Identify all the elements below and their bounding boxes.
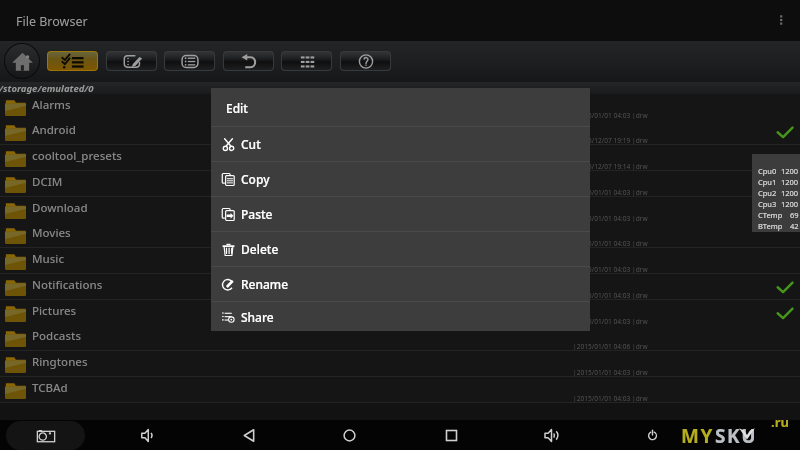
- button[interactable]: Rename: [211, 267, 590, 301]
- button[interactable]: Edit: [107, 52, 156, 70]
- staticText: DCIM: [32, 174, 63, 190]
- staticText: |2015/01/01 04:03 |drw: [573, 317, 648, 326]
- button[interactable]: Help: [341, 52, 390, 70]
- staticText: CTemp: [758, 210, 783, 220]
- staticText: 69: [790, 210, 799, 220]
- staticText: |2015/01/01 04:03 |drw: [573, 111, 648, 120]
- button[interactable]: Ringtones: [0, 351, 800, 377]
- staticText: Edit: [226, 100, 248, 116]
- staticText: File Browser: [16, 13, 88, 30]
- button[interactable]: Music: [0, 248, 800, 274]
- staticText: Android: [32, 122, 76, 138]
- staticText: Notifications: [32, 277, 103, 293]
- staticText: Cut: [241, 136, 261, 152]
- button[interactable]: Select mode: [48, 52, 97, 70]
- staticText: .ru: [771, 413, 789, 431]
- staticText: 1200: [781, 166, 799, 176]
- staticText: Cpu2: [758, 188, 777, 198]
- staticText: |2015/01/01 04:06 |drw: [573, 342, 648, 351]
- button[interactable]: More options: [768, 7, 794, 33]
- staticText: 42: [790, 221, 799, 231]
- button[interactable]: Undo: [224, 52, 273, 70]
- button[interactable]: Alarms: [0, 94, 800, 120]
- staticText: |2015/12/07 19:14 |drw: [573, 162, 648, 171]
- staticText: cooltool_presets: [32, 148, 122, 164]
- button[interactable]: cooltool_presets: [0, 145, 800, 171]
- button[interactable]: Power: [637, 420, 667, 450]
- button[interactable]: Share: [211, 302, 590, 331]
- staticText: |2015/01/01 04:03 |drw: [573, 239, 648, 248]
- button[interactable]: List: [165, 52, 214, 70]
- button[interactable]: Android: [0, 119, 800, 145]
- button[interactable]: Volume up: [536, 420, 566, 450]
- staticText: |2015/01/01 04:03 |drw: [573, 265, 648, 274]
- staticText: |2015/01/01 04:03 |drw: [573, 368, 648, 377]
- button[interactable]: Screenshot: [6, 421, 85, 450]
- button[interactable]: Pictures: [0, 300, 800, 326]
- button[interactable]: Grid: [282, 52, 331, 70]
- staticText: Cpu1: [758, 177, 777, 187]
- staticText: Delete: [241, 241, 279, 257]
- button[interactable]: Podcasts: [0, 325, 800, 351]
- button[interactable]: Home: [334, 420, 364, 450]
- staticText: |2015/01/01 04:03 |drw: [573, 214, 648, 223]
- staticText: |2015/01/01 04:03 |drw: [573, 291, 648, 300]
- staticText: SKU: [715, 423, 758, 449]
- staticText: Music: [32, 251, 65, 267]
- staticText: |2015/01/01 04:03 |drw: [573, 188, 648, 197]
- staticText: Share: [241, 309, 274, 325]
- staticText: MY: [681, 423, 715, 449]
- button[interactable]: Copy: [211, 162, 590, 196]
- button[interactable]: Volume down: [132, 420, 162, 450]
- staticText: Copy: [241, 171, 270, 187]
- staticText: BTemp: [758, 221, 783, 231]
- button[interactable]: Recents: [436, 420, 466, 450]
- button[interactable]: Movies: [0, 222, 800, 248]
- staticText: 1200: [781, 188, 799, 198]
- staticText: /storage/emulated/0: [0, 82, 94, 94]
- staticText: Cpu0: [758, 166, 777, 176]
- staticText: Download: [32, 200, 88, 216]
- button[interactable]: Notifications: [0, 274, 800, 300]
- button[interactable]: Delete: [211, 232, 590, 266]
- staticText: Cpu3: [758, 199, 777, 209]
- staticText: Pictures: [32, 303, 77, 319]
- staticText: Podcasts: [32, 328, 81, 344]
- button[interactable]: Back: [234, 420, 264, 450]
- button[interactable]: TCBAd: [0, 377, 800, 403]
- staticText: 1200: [781, 177, 799, 187]
- staticText: Alarms: [32, 97, 71, 113]
- staticText: TCBAd: [32, 380, 68, 396]
- button[interactable]: DCIM: [0, 171, 800, 197]
- staticText: |2015/01/01 04:03 |drw: [573, 394, 648, 403]
- button[interactable]: Home: [5, 44, 39, 78]
- staticText: Rename: [241, 276, 289, 292]
- staticText: Movies: [32, 225, 71, 241]
- staticText: 1200: [781, 199, 799, 209]
- staticText: Paste: [241, 206, 273, 222]
- button[interactable]: Paste: [211, 197, 590, 231]
- staticText: Ringtones: [32, 354, 88, 370]
- button[interactable]: Cut: [211, 127, 590, 161]
- staticText: |2015/12/07 19:19 |drw: [573, 136, 648, 145]
- button[interactable]: Download: [0, 197, 800, 223]
